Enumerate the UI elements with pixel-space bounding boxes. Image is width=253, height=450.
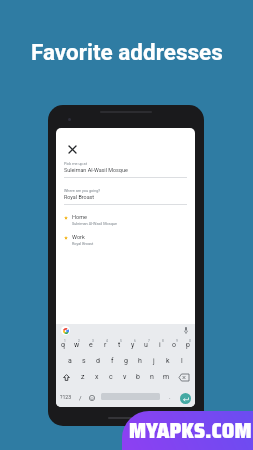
button[interactable]: s [77, 353, 91, 369]
staticText: 6 [134, 339, 136, 343]
staticText: Royal Broast [72, 241, 94, 245]
button[interactable]: b [131, 369, 145, 385]
staticText: / [79, 394, 82, 401]
button[interactable]: e [84, 337, 98, 353]
button[interactable]: o [167, 337, 181, 353]
staticText: 5 [120, 339, 122, 343]
staticText: v [123, 373, 127, 381]
button[interactable]: f [105, 353, 119, 369]
staticText: e [89, 341, 93, 349]
button[interactable]: y [126, 337, 140, 353]
button[interactable]: ?123 [56, 391, 76, 403]
button[interactable]: Enter [180, 393, 191, 404]
button[interactable]: q [56, 337, 70, 353]
button[interactable]: d [91, 353, 105, 369]
staticText: x [95, 373, 99, 381]
button[interactable]: m [159, 369, 173, 385]
staticText: 8 [162, 339, 164, 343]
staticText: n [150, 373, 154, 381]
staticText: j [153, 357, 155, 365]
staticText: ?123 [60, 394, 72, 400]
staticText: Suleiman Al-Wasil Mosque [72, 221, 117, 225]
staticText: 2 [78, 339, 80, 343]
button[interactable]: Work [56, 233, 195, 252]
button[interactable]: z [76, 369, 90, 385]
staticText: t [118, 341, 121, 349]
staticText: 1 [64, 339, 66, 343]
staticText: y [131, 341, 135, 349]
staticText: 7 [148, 339, 150, 343]
button[interactable]: k [161, 353, 175, 369]
staticText: 0 [189, 339, 191, 343]
staticText: MYAPKS.COM [129, 414, 252, 447]
staticText: Suleiman Al-Wasil Mosque [64, 167, 128, 173]
staticText: u [144, 341, 148, 349]
staticText: z [81, 373, 85, 381]
staticText: Favorite addresses [31, 39, 223, 65]
button[interactable]: g [119, 353, 133, 369]
button[interactable]: Shift [59, 369, 73, 385]
staticText: q [61, 341, 65, 349]
staticText: Work [72, 234, 85, 241]
staticText: Pick me up at [64, 161, 87, 165]
staticText: a [68, 357, 72, 365]
staticText: p [186, 341, 190, 349]
staticText: g [124, 357, 128, 365]
button[interactable]: r [98, 337, 112, 353]
staticText: l [181, 357, 183, 365]
staticText: . [169, 393, 171, 400]
staticText: b [136, 373, 140, 381]
button[interactable]: c [104, 369, 118, 385]
staticText: Where are you going? [64, 188, 101, 192]
staticText: Home [72, 214, 88, 221]
staticText: 9 [176, 339, 178, 343]
button[interactable]: Home [56, 213, 195, 232]
staticText: 3 [92, 339, 94, 343]
staticText: r [104, 341, 107, 349]
button[interactable]: h [133, 353, 147, 369]
staticText: k [166, 357, 170, 365]
staticText: s [82, 357, 86, 365]
button[interactable]: p [181, 337, 195, 353]
staticText: w [74, 341, 80, 349]
button[interactable]: t [112, 337, 126, 353]
button[interactable]: l [175, 353, 189, 369]
staticText: 4 [106, 339, 108, 343]
staticText: i [159, 341, 161, 349]
button[interactable]: x [90, 369, 104, 385]
button[interactable]: u [139, 337, 153, 353]
staticText: c [109, 373, 113, 381]
button[interactable]: a [63, 353, 77, 369]
staticText: h [138, 357, 142, 365]
staticText: m [163, 373, 170, 381]
button[interactable]: Backspace [177, 369, 191, 385]
button[interactable]: j [147, 353, 161, 369]
staticText: d [96, 357, 100, 365]
button[interactable]: Close [64, 141, 80, 157]
button[interactable]: n [145, 369, 159, 385]
button[interactable]: i [153, 337, 167, 353]
staticText: f [111, 357, 114, 365]
staticText: o [172, 341, 176, 349]
button[interactable]: v [118, 369, 132, 385]
staticText: Royal Broast [64, 194, 95, 200]
button[interactable]: w [70, 337, 84, 353]
